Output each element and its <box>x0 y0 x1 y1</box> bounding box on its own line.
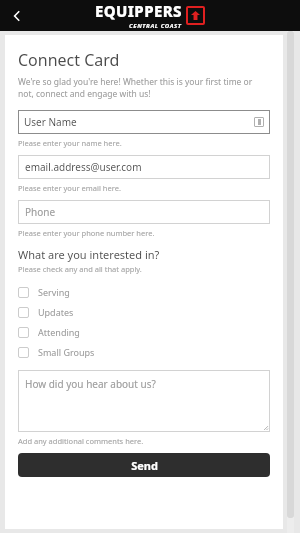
button[interactable]: email.address@user.com <box>18 155 270 179</box>
staticText: User Name <box>24 115 77 129</box>
button[interactable]: User Name <box>18 110 270 134</box>
button[interactable]: Phone <box>18 200 270 224</box>
staticText: email.address@user.com <box>25 160 142 174</box>
staticText: Please enter your phone number here. <box>18 228 155 238</box>
staticText: How did you hear about us? <box>25 377 156 391</box>
staticText: We're so glad you're here! Whether this … <box>18 76 270 100</box>
staticText: Please enter your email here. <box>18 183 121 193</box>
staticText: Serving <box>38 286 70 298</box>
staticText: Small Groups <box>38 346 95 358</box>
staticText: Send <box>131 458 158 473</box>
staticText: Connect Card <box>18 49 120 71</box>
button[interactable]: Back <box>0 0 34 31</box>
button[interactable]: How did you hear about us? <box>18 370 270 432</box>
staticText: What are you interested in? <box>18 247 160 262</box>
staticText: Updates <box>38 306 74 318</box>
staticText: Attending <box>38 326 80 338</box>
staticText: EQUIPPERS <box>95 1 182 21</box>
button[interactable]: Attending <box>18 322 270 342</box>
staticText: Please enter your name here. <box>18 138 122 148</box>
staticText: CENTRAL COAST <box>129 22 182 30</box>
staticText: Please check any and all that apply. <box>18 264 142 274</box>
staticText: Phone <box>25 205 56 219</box>
button[interactable]: Updates <box>18 302 270 322</box>
button[interactable]: Send <box>18 453 270 477</box>
staticText: Add any additional comments here. <box>18 436 144 446</box>
button[interactable]: Serving <box>18 282 270 302</box>
button[interactable]: Small Groups <box>18 342 270 362</box>
button[interactable]: EQUIPPERS <box>95 1 205 30</box>
